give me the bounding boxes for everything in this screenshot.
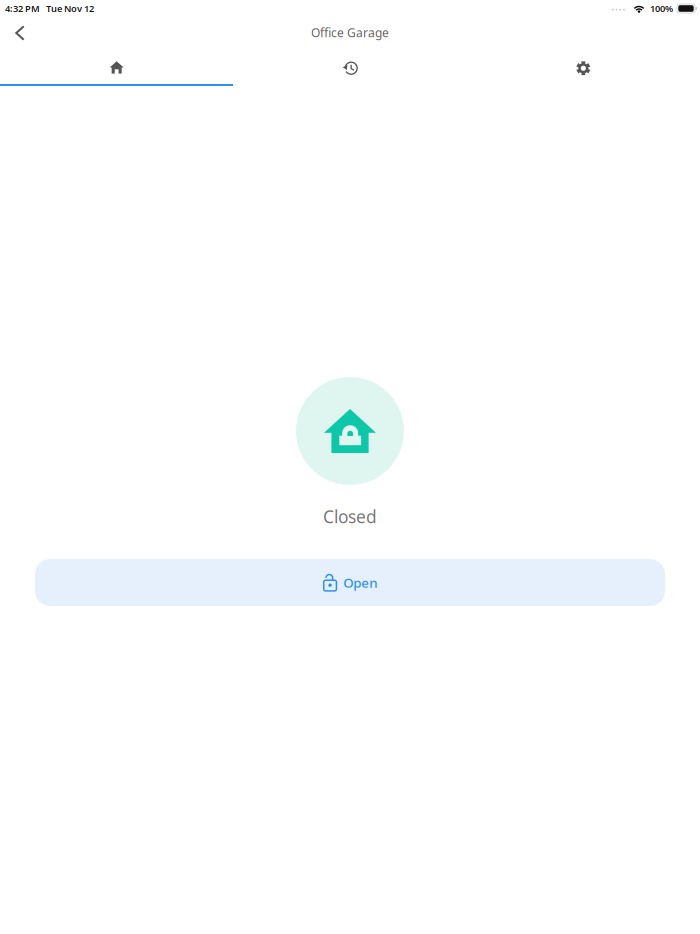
staticText: 4:32 PM [5, 2, 40, 15]
button[interactable]: Home [0, 51, 233, 86]
staticText: Office Garage [311, 24, 389, 40]
button[interactable]: History [233, 51, 467, 86]
button[interactable]: Back [0, 17, 40, 51]
button[interactable]: Open [35, 559, 665, 606]
staticText: Open [343, 574, 377, 591]
staticText: Tue Nov 12 [46, 2, 94, 15]
staticText: Closed [323, 505, 377, 528]
button[interactable]: Settings [467, 51, 700, 86]
staticText: 100% [650, 2, 673, 15]
